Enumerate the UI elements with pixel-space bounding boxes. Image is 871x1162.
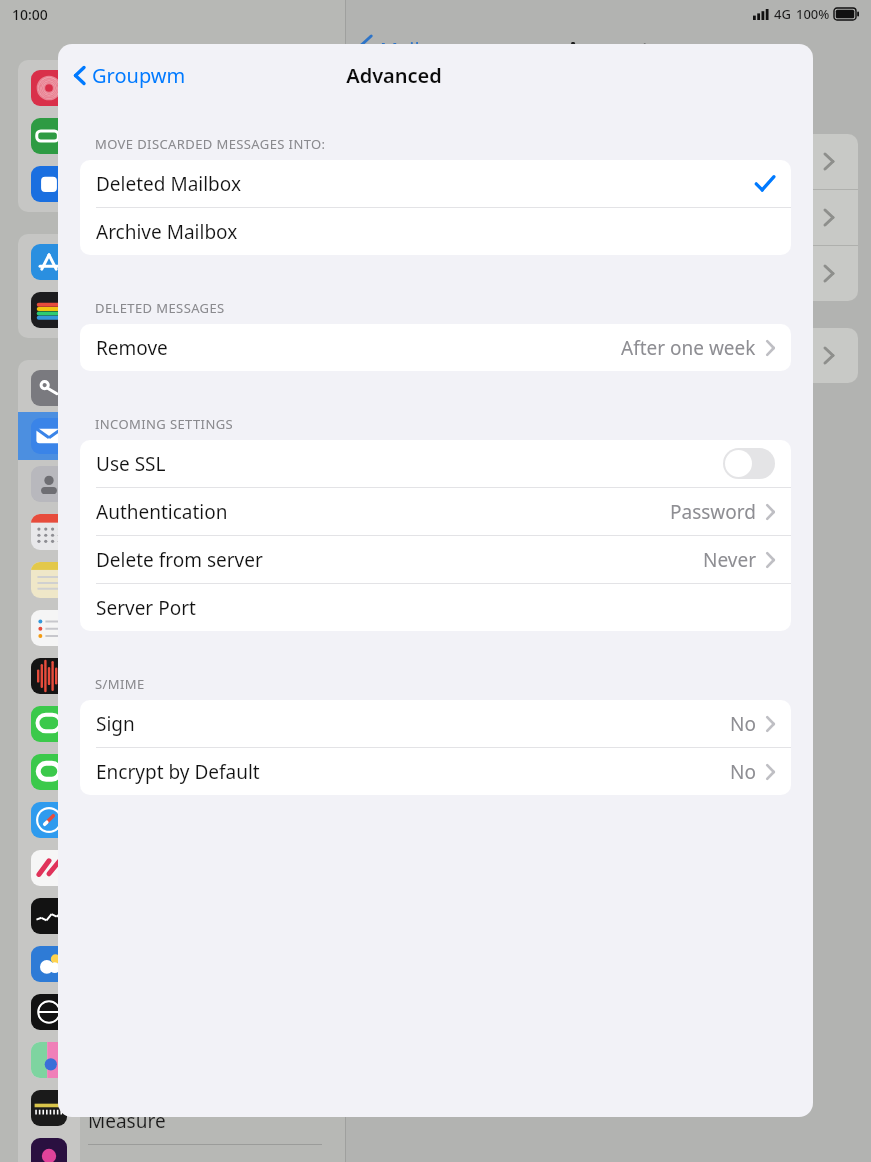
staticText: Never — [703, 547, 756, 573]
button[interactable]: Maps — [18, 1036, 80, 1084]
button[interactable]: Weather — [18, 940, 80, 988]
staticText: Password — [670, 499, 756, 525]
button[interactable]: Sign — [80, 700, 791, 747]
button[interactable]: Calendar — [18, 508, 80, 556]
staticText: Measure — [88, 1108, 166, 1134]
button[interactable]: Use SSL toggle — [723, 448, 775, 479]
staticText: Use SSL — [96, 451, 166, 477]
staticText: Archive Mailbox — [96, 219, 238, 245]
button[interactable]: Touch — [18, 64, 80, 112]
button[interactable]: Mail — [18, 412, 80, 460]
staticText: 100% — [796, 5, 830, 23]
staticText: Advanced — [346, 62, 442, 89]
staticText: S/MIME — [95, 675, 145, 693]
button[interactable]: Authentication — [80, 488, 791, 535]
staticText: 10:00 — [12, 5, 48, 24]
button[interactable]: Reminders — [18, 604, 80, 652]
button[interactable]: Deleted Mailbox — [80, 160, 791, 207]
button[interactable]: Use SSL — [80, 440, 791, 487]
staticText: Settings — [138, 36, 241, 70]
staticText: MOVE DISCARDED MESSAGES INTO: — [95, 135, 326, 153]
staticText: INCOMING SETTINGS — [95, 415, 234, 433]
staticText: Accounts — [566, 36, 660, 65]
button[interactable]: Encrypt by Default — [80, 748, 791, 795]
button[interactable]: Battery — [18, 112, 80, 160]
button[interactable]: Groupwm — [70, 56, 190, 95]
button[interactable]: Phone — [18, 748, 80, 796]
staticText: Remove — [96, 335, 168, 361]
button[interactable]: Server Port — [80, 584, 791, 631]
button[interactable]: Measure — [18, 1084, 80, 1132]
button[interactable]: AppStore — [18, 238, 80, 286]
staticText: Sign — [96, 711, 135, 737]
staticText: After one week — [621, 335, 756, 361]
button[interactable]: Delete from server — [80, 536, 791, 583]
button[interactable]: News — [18, 844, 80, 892]
button[interactable]: Notes — [18, 556, 80, 604]
button[interactable]: Translate — [18, 988, 80, 1036]
button[interactable]: Archive Mailbox — [80, 208, 791, 255]
staticText: Mail — [380, 36, 420, 63]
button[interactable]: Remove — [80, 324, 791, 371]
button[interactable]: Shortcuts — [18, 1132, 80, 1162]
button[interactable]: Passwords — [18, 364, 80, 412]
staticText: 4G — [774, 5, 791, 23]
staticText: Groupwm — [92, 62, 186, 89]
staticText: No — [730, 759, 756, 785]
staticText: Delete from server — [96, 547, 263, 573]
other: Selected — [755, 175, 775, 192]
staticText: DELETED MESSAGES — [95, 299, 225, 317]
button[interactable]: Messages — [18, 700, 80, 748]
staticText: Server Port — [96, 595, 196, 621]
button[interactable]: Safari — [18, 796, 80, 844]
button[interactable]: Contacts — [18, 460, 80, 508]
button[interactable]: Stocks — [18, 892, 80, 940]
staticText: Encrypt by Default — [96, 759, 260, 785]
button[interactable]: Hand — [18, 160, 80, 208]
staticText: Deleted Mailbox — [96, 171, 241, 197]
staticText: Authentication — [96, 499, 228, 525]
staticText: No — [730, 711, 756, 737]
button[interactable]: Wallet — [18, 286, 80, 334]
button[interactable]: Voice — [18, 652, 80, 700]
